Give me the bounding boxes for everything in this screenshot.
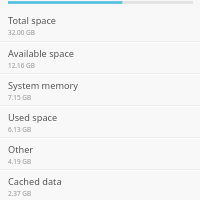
staticText: Total space — [8, 14, 57, 27]
button[interactable]: Other — [0, 139, 200, 169]
staticText: 32.00 GB — [8, 28, 35, 37]
staticText: Available space — [8, 47, 74, 60]
staticText: Cached data — [8, 175, 62, 188]
button[interactable]: Available space — [0, 43, 200, 73]
button[interactable]: Cached data — [0, 171, 200, 200]
button[interactable]: Total space — [0, 9, 200, 41]
staticText: Other — [8, 143, 34, 156]
staticText: 4.19 GB — [8, 157, 32, 166]
staticText: 6.13 GB — [8, 125, 32, 134]
button[interactable]: Used space — [0, 107, 200, 137]
staticText: 7.15 GB — [8, 93, 32, 102]
staticText: 2.37 GB — [8, 189, 32, 198]
staticText: System memory — [8, 79, 79, 92]
staticText: Used space — [8, 111, 58, 124]
button[interactable]: System memory — [0, 75, 200, 105]
staticText: 12.16 GB — [8, 61, 35, 70]
